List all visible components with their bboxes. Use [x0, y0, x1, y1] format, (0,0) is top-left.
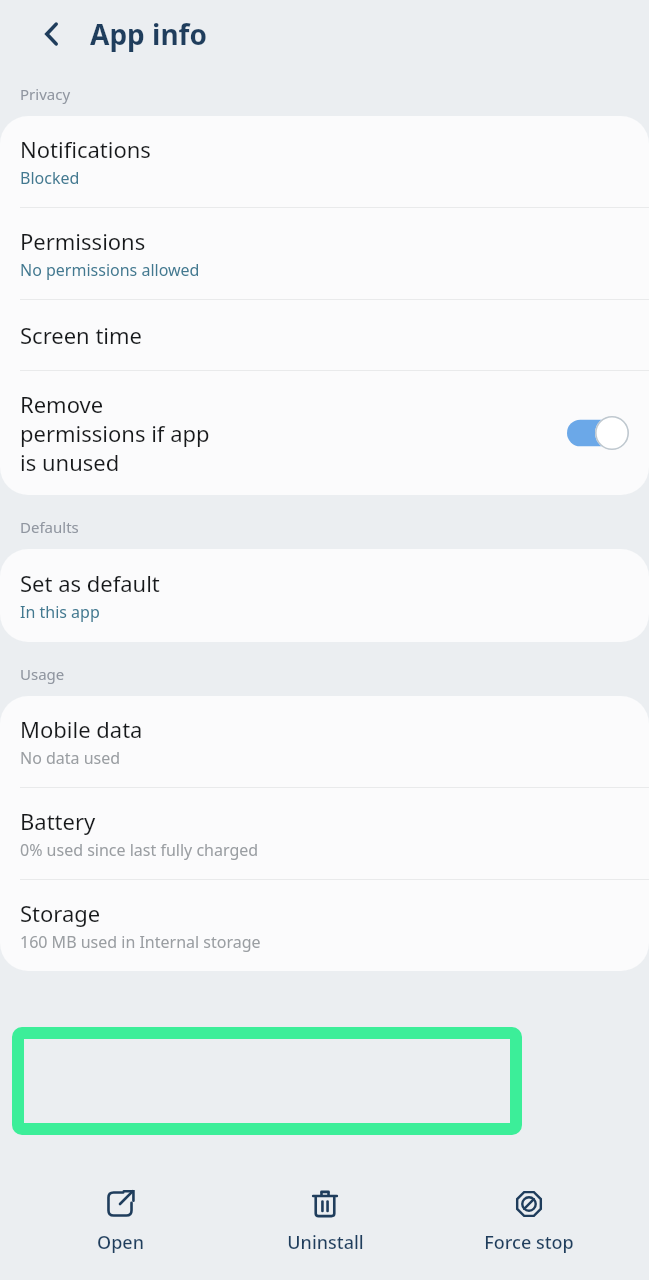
- staticText: Mobile data: [20, 714, 143, 744]
- button[interactable]: Permissions: [0, 208, 649, 299]
- staticText: No permissions allowed: [20, 259, 200, 281]
- button[interactable]: Screen time: [0, 300, 649, 370]
- button[interactable]: Mobile data: [0, 696, 649, 787]
- staticText: 160 MB used in Internal storage: [20, 931, 261, 953]
- button[interactable]: Force stop: [444, 1182, 614, 1261]
- staticText: Notifications: [20, 134, 151, 164]
- staticText: App info: [90, 15, 207, 53]
- button[interactable]: Remove permissions if app is unused: [0, 371, 649, 495]
- staticText: No data used: [20, 747, 121, 769]
- staticText: Permissions: [20, 226, 146, 256]
- staticText: Usage: [20, 664, 65, 684]
- button[interactable]: Storage: [0, 880, 649, 971]
- staticText: Privacy: [20, 84, 71, 104]
- button[interactable]: Open: [35, 1182, 205, 1261]
- button[interactable]: Battery: [0, 788, 649, 879]
- button[interactable]: Remove permissions toggle: [567, 416, 629, 450]
- staticText: Remove permissions if app is unused: [20, 389, 230, 477]
- staticText: Uninstall: [287, 1230, 364, 1255]
- staticText: Screen time: [20, 320, 143, 350]
- staticText: In this app: [20, 601, 100, 623]
- button[interactable]: Uninstall: [240, 1182, 410, 1261]
- staticText: Force stop: [484, 1230, 574, 1255]
- button[interactable]: Notifications: [0, 116, 649, 207]
- staticText: Defaults: [20, 517, 79, 537]
- button[interactable]: Back: [28, 10, 76, 58]
- staticText: Open: [97, 1230, 144, 1255]
- staticText: Battery: [20, 806, 96, 836]
- button[interactable]: Set as default: [0, 549, 649, 642]
- staticText: Set as default: [20, 568, 160, 598]
- staticText: Storage: [20, 898, 101, 928]
- staticText: 0% used since last fully charged: [20, 839, 259, 861]
- staticText: Blocked: [20, 167, 80, 189]
